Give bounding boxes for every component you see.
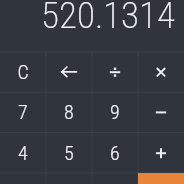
button[interactable]: Plus <box>138 132 184 172</box>
button[interactable]: 6 <box>92 132 138 172</box>
button[interactable]: Minus <box>138 92 184 132</box>
button[interactable]: Clear <box>0 52 46 92</box>
button[interactable]: 8 <box>46 92 92 132</box>
button[interactable]: Divide <box>92 52 138 92</box>
button[interactable]: Multiply <box>138 52 184 92</box>
button[interactable]: 4 <box>0 132 46 172</box>
button[interactable]: 7 <box>0 92 46 132</box>
button[interactable]: Backspace <box>46 52 92 92</box>
button[interactable]: 5 <box>46 132 92 172</box>
button[interactable]: 9 <box>92 92 138 132</box>
button[interactable]: Equals <box>138 172 184 184</box>
